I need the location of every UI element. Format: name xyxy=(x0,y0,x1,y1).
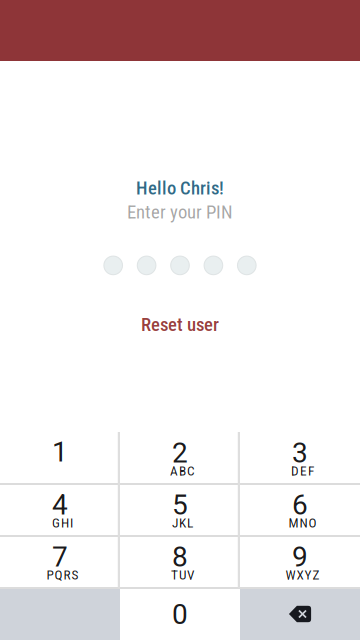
button[interactable]: 8 xyxy=(120,536,240,588)
staticText: JKL xyxy=(172,515,193,531)
staticText: 8 xyxy=(172,541,188,573)
staticText: WXYZ xyxy=(285,567,319,583)
staticText: 2 xyxy=(172,437,188,469)
staticText: 4 xyxy=(52,489,68,521)
staticText: GHI xyxy=(52,515,73,531)
staticText: 0 xyxy=(172,598,188,631)
staticText: 9 xyxy=(292,541,308,573)
button[interactable]: 0 xyxy=(120,588,240,640)
staticText: 3 xyxy=(292,437,308,469)
button[interactable]: 9 xyxy=(240,536,360,588)
staticText: Reset user xyxy=(141,314,219,336)
button[interactable]: 7 xyxy=(0,536,120,588)
staticText: Hello Chris! xyxy=(136,177,224,199)
staticText: PQRS xyxy=(46,567,78,583)
button[interactable]: 3 xyxy=(240,432,360,484)
staticText: MNO xyxy=(288,515,316,531)
button[interactable]: 4 xyxy=(0,484,120,536)
button[interactable]: 6 xyxy=(240,484,360,536)
staticText: DEF xyxy=(291,463,314,479)
staticText: 5 xyxy=(172,489,188,521)
staticText: 6 xyxy=(292,489,308,521)
staticText: ABC xyxy=(170,463,195,479)
staticText: 1 xyxy=(52,436,68,468)
staticText: 7 xyxy=(52,541,68,573)
button[interactable]: Backspace xyxy=(240,588,360,640)
staticText: TUV xyxy=(171,567,194,583)
button[interactable]: 1 xyxy=(0,432,120,484)
button[interactable]: 5 xyxy=(120,484,240,536)
staticText: Enter your PIN xyxy=(127,201,233,223)
button[interactable]: 2 xyxy=(120,432,240,484)
button[interactable]: Reset user xyxy=(133,306,227,344)
